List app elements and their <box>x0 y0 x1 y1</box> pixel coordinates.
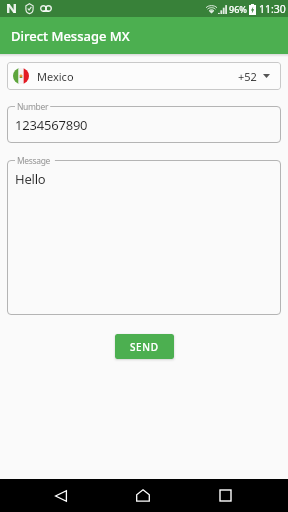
staticText: +52 <box>238 69 257 84</box>
button[interactable]: Back <box>39 479 83 512</box>
button[interactable]: Home <box>121 479 165 512</box>
button[interactable]: Recent apps <box>203 479 247 512</box>
staticText: 11:30 <box>259 2 286 16</box>
staticText: Mexico <box>37 69 74 84</box>
staticText: Number <box>17 101 49 113</box>
staticText: 1234567890 <box>15 116 88 134</box>
button[interactable]: Mexico <box>7 62 281 90</box>
staticText: 96% <box>229 3 247 15</box>
staticText: Hello <box>15 170 46 188</box>
button[interactable]: SEND <box>115 334 174 359</box>
staticText: Direct Message MX <box>11 27 130 45</box>
staticText: SEND <box>130 340 159 354</box>
staticText: Message <box>17 155 50 167</box>
